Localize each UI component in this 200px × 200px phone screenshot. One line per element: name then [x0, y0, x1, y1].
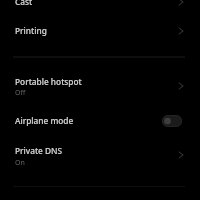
other: Private DNS: [174, 148, 188, 162]
staticText: Private DNS: [15, 145, 63, 156]
button[interactable]: Cast: [0, 0, 200, 16]
staticText: Off: [15, 88, 26, 98]
button[interactable]: Airplane mode: [0, 106, 200, 135]
other: Portable hotspot: [174, 79, 188, 93]
staticText: Portable hotspot: [15, 76, 82, 87]
staticText: On: [15, 158, 25, 168]
staticText: Cast: [15, 0, 33, 7]
button[interactable]: Private DNS: [0, 135, 200, 175]
other: Cast: [174, 0, 188, 9]
other: Printing: [174, 24, 188, 38]
staticText: Airplane mode: [15, 115, 74, 126]
button[interactable]: Portable hotspot: [0, 66, 200, 106]
button[interactable]: Airplane mode toggle, off: [162, 115, 182, 127]
button[interactable]: Printing: [0, 16, 200, 45]
staticText: Printing: [15, 25, 47, 36]
